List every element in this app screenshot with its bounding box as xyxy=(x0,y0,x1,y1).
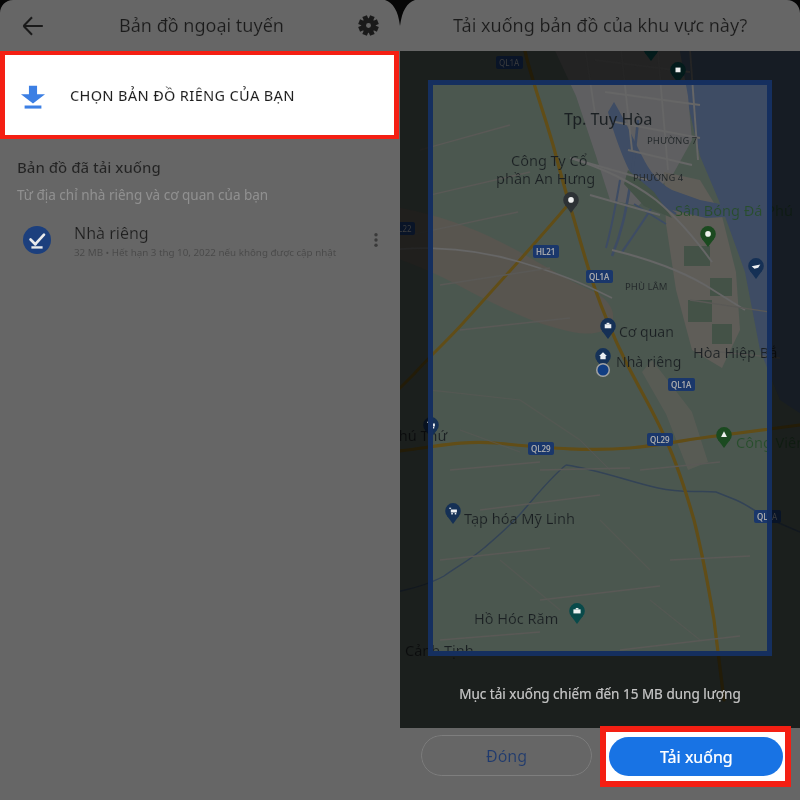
staticText: Nhà riêng xyxy=(74,222,149,244)
staticText: QL1A xyxy=(589,271,610,282)
staticText: Bản đồ ngoại tuyến xyxy=(66,13,337,38)
staticText: Tạp hóa Mỹ Linh xyxy=(464,508,575,528)
staticText: PHƯỜNG 4 xyxy=(633,171,684,184)
button[interactable]: Nhà riêng xyxy=(0,212,400,268)
button[interactable]: Back xyxy=(0,0,66,51)
staticText: QL1A xyxy=(499,57,520,68)
staticText: QL29 xyxy=(650,434,670,445)
staticText: PHÙ LÂM xyxy=(625,280,668,293)
staticText: Sân Bóng Đá Phú xyxy=(675,200,767,220)
staticText: Công Ty Cổ xyxy=(511,150,588,170)
staticText: QL1A xyxy=(671,379,692,390)
staticText: QL1A xyxy=(757,511,767,522)
staticText: Tp. Tuy Hòa xyxy=(564,108,653,130)
staticText: HL21 xyxy=(536,246,556,257)
staticText: PHƯỜNG 4 xyxy=(633,171,684,184)
staticText: Sân Bóng Đá Phú xyxy=(675,200,793,220)
staticText: Từ địa chỉ nhà riêng và cơ quan của bạn xyxy=(17,186,269,204)
staticText: PHƯỜNG 7 xyxy=(647,134,698,147)
staticText: Tải xuống xyxy=(660,746,733,768)
staticText: Phú Thứ xyxy=(433,425,448,445)
staticText: QL29 xyxy=(531,443,551,454)
staticText: Công Viên xyxy=(736,432,767,452)
staticText: Công Viên xyxy=(736,432,800,452)
staticText: Nhà riêng xyxy=(616,352,682,371)
button[interactable]: Tải xuống xyxy=(609,737,783,776)
staticText: Hồ Hóc Răm xyxy=(474,608,559,628)
button[interactable]: Settings xyxy=(337,0,400,51)
staticText: QL29 xyxy=(531,443,551,454)
staticText: Nghinh Phong xyxy=(512,30,611,50)
staticText: Quảng Trường xyxy=(518,12,618,32)
staticText: PHÙ LÂM xyxy=(625,280,668,293)
staticText: Cơ quan xyxy=(619,322,674,341)
staticText: phần An Hưng xyxy=(496,168,596,188)
button[interactable]: More options xyxy=(356,220,396,260)
staticText: Cảnh Tịnh xyxy=(405,640,474,660)
staticText: Tải xuống bản đồ của khu vực này? xyxy=(453,13,748,38)
staticText: Đóng xyxy=(486,745,528,767)
staticText: Mục tải xuống chiếm đến 15 MB dung lượng xyxy=(400,685,800,703)
staticText: Cơ quan xyxy=(619,322,674,341)
staticText: QL1A xyxy=(671,379,692,390)
staticText: QL22 xyxy=(400,223,412,234)
staticText: QL1A xyxy=(589,271,610,282)
staticText: Nhà riêng xyxy=(616,352,682,371)
staticText: Cảnh Tịnh xyxy=(433,640,474,651)
staticText: Công Ty Cổ xyxy=(511,150,588,170)
staticText: HL21 xyxy=(536,246,556,257)
staticText: Hồ Hóc Răm xyxy=(474,608,559,628)
staticText: Phú Thứ xyxy=(400,425,448,445)
staticText: Hòa Hiệp Bắ xyxy=(693,342,778,362)
staticText: Tp. Tuy Hòa xyxy=(564,108,653,130)
staticText: 32 MB • Hết hạn 3 thg 10, 2022 nếu không… xyxy=(74,246,337,259)
button[interactable]: CHỌN BẢN ĐỒ RIÊNG CỦA BẠN xyxy=(5,55,394,135)
staticText: Bản đồ đã tải xuống xyxy=(17,157,161,177)
staticText: PHƯỜNG 7 xyxy=(647,134,698,147)
staticText: Tạp hóa Mỹ Linh xyxy=(464,508,575,528)
staticText: QL29 xyxy=(650,434,670,445)
staticText: CHỌN BẢN ĐỒ RIÊNG CỦA BẠN xyxy=(70,85,295,105)
button[interactable]: Đóng xyxy=(421,735,592,776)
staticText: Hòa Hiệp Bắ xyxy=(693,342,767,362)
staticText: QL1A xyxy=(757,511,778,522)
staticText: phần An Hưng xyxy=(496,168,596,188)
